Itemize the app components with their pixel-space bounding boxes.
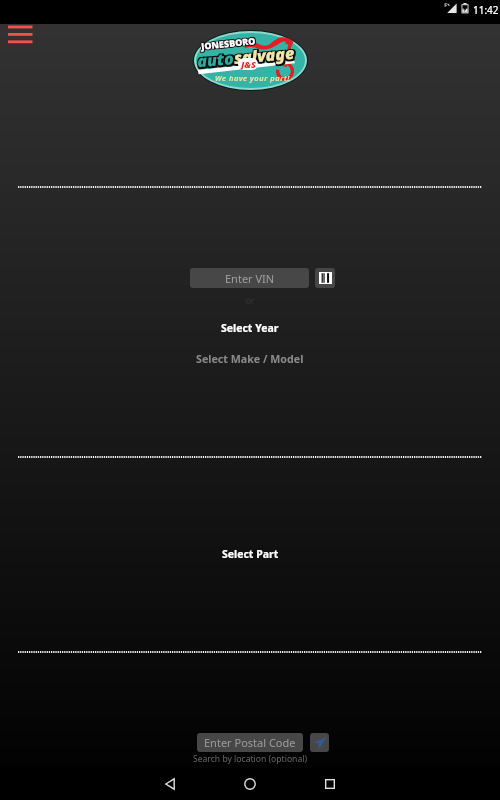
staticText: salvage bbox=[232, 44, 295, 71]
staticText: salvage bbox=[233, 41, 296, 68]
staticText: JONESBORO bbox=[200, 35, 256, 53]
staticText: Enter Postal Code bbox=[204, 735, 296, 750]
staticText: salvage bbox=[235, 42, 298, 69]
staticText: auto bbox=[195, 46, 234, 71]
button[interactable]: Select Part bbox=[0, 543, 500, 565]
button[interactable]: Use my location bbox=[310, 733, 329, 752]
staticText: auto bbox=[196, 46, 235, 71]
staticText: auto bbox=[198, 46, 237, 71]
staticText: auto bbox=[196, 49, 235, 74]
staticText: salvage bbox=[235, 41, 298, 68]
button[interactable]: Back bbox=[150, 768, 190, 800]
staticText: JONESBORO bbox=[199, 34, 255, 52]
button[interactable]: Enter Postal Code bbox=[197, 733, 303, 752]
button[interactable]: Select Year bbox=[0, 317, 500, 339]
staticText: 11:42 bbox=[473, 3, 499, 17]
button[interactable]: Select Make / Model bbox=[0, 348, 500, 370]
staticText: auto bbox=[198, 49, 237, 74]
button[interactable]: Jonesboro Auto Salvage bbox=[193, 30, 308, 91]
staticText: salvage bbox=[233, 42, 296, 69]
button[interactable]: Enter VIN bbox=[190, 268, 309, 288]
button[interactable]: Scan barcode bbox=[315, 268, 335, 288]
staticText: J&S bbox=[241, 58, 256, 70]
staticText: JONESBORO bbox=[199, 33, 255, 51]
staticText: auto bbox=[196, 47, 235, 72]
staticText: JONESBORO bbox=[200, 34, 256, 52]
staticText: auto bbox=[198, 47, 237, 72]
staticText: salvage bbox=[232, 42, 295, 69]
staticText: JONESBORO bbox=[200, 33, 256, 51]
staticText: auto bbox=[195, 47, 234, 72]
staticText: Select Part bbox=[222, 547, 279, 561]
button[interactable]: Recents bbox=[310, 768, 350, 800]
staticText: salvage bbox=[232, 41, 295, 68]
staticText: Search by location (optional) bbox=[0, 753, 500, 765]
staticText: salvage bbox=[233, 44, 296, 71]
button[interactable]: Home bbox=[230, 768, 270, 800]
staticText: We have your part! bbox=[215, 73, 290, 83]
staticText: JONESBORO bbox=[201, 33, 257, 51]
staticText: salvage bbox=[235, 44, 298, 71]
staticText: JONESBORO bbox=[202, 35, 258, 53]
button[interactable]: Menu bbox=[0, 24, 44, 50]
staticText: Select Make / Model bbox=[196, 352, 304, 367]
staticText: JONESBORO bbox=[201, 35, 257, 53]
staticText: JONESBORO bbox=[201, 34, 257, 52]
staticText: Enter VIN bbox=[225, 271, 275, 286]
staticText: Select Year bbox=[221, 321, 279, 335]
staticText: auto bbox=[195, 49, 234, 74]
